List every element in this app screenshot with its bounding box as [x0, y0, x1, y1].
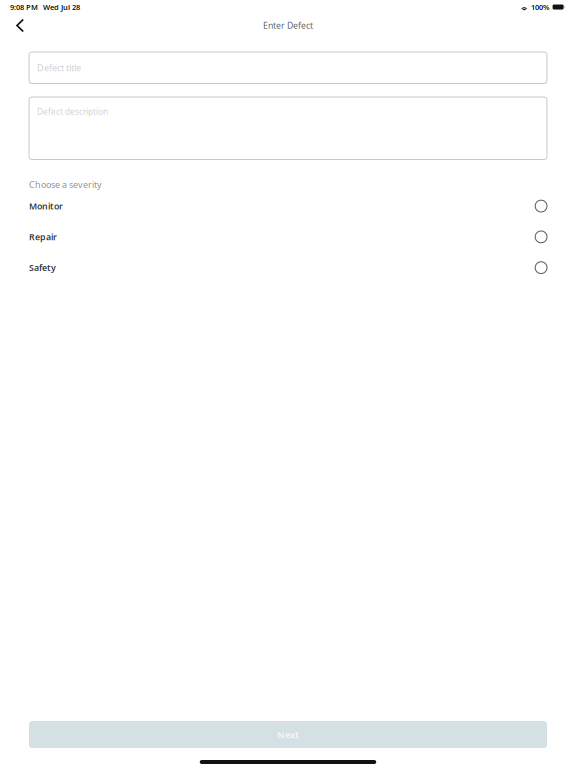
button[interactable]: Back	[0, 13, 36, 37]
staticText: Choose a severity	[29, 178, 102, 191]
staticText: 100%	[531, 2, 550, 12]
button[interactable]: Repair	[29, 221, 547, 252]
staticText: Wed Jul 28	[43, 2, 80, 12]
staticText: Enter Defect	[263, 20, 313, 31]
staticText: 9:08 PM	[10, 2, 38, 12]
staticText: Safety	[29, 262, 56, 274]
button[interactable]: Safety	[29, 252, 547, 283]
staticText: Defect description	[37, 106, 108, 117]
staticText: Next	[277, 728, 299, 741]
button[interactable]: Monitor	[29, 191, 547, 221]
staticText: Defect title	[37, 62, 81, 74]
staticText: Monitor	[29, 200, 63, 212]
staticText: Repair	[29, 231, 57, 243]
